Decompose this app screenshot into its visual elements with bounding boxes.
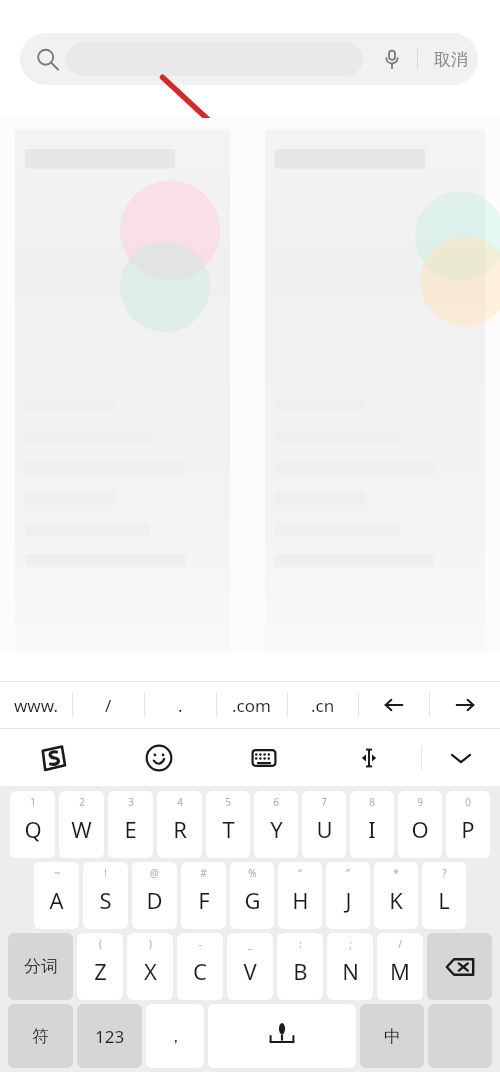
staticText: H	[292, 885, 309, 915]
staticText: 符	[32, 1026, 49, 1047]
staticText: 取消	[434, 49, 468, 70]
button[interactable]: .com	[216, 682, 287, 728]
staticText: G	[244, 885, 261, 915]
staticText: 6	[273, 795, 279, 809]
button[interactable]: Back	[358, 682, 429, 728]
staticText: P	[461, 814, 475, 844]
staticText: 5	[225, 795, 231, 809]
button[interactable]: 3	[108, 791, 153, 858]
staticText: ”	[346, 866, 350, 880]
button[interactable]: 7	[302, 791, 346, 858]
staticText: )	[149, 937, 152, 951]
button[interactable]: 9	[398, 791, 442, 858]
staticText: .	[178, 694, 183, 717]
staticText: S	[99, 885, 112, 915]
button[interactable]: #	[181, 862, 226, 929]
button[interactable]: ?	[422, 862, 466, 929]
button[interactable]: (	[77, 933, 123, 1000]
staticText: /	[398, 937, 402, 951]
button[interactable]: )	[127, 933, 173, 1000]
staticText: “	[298, 866, 302, 880]
staticText: (	[99, 937, 102, 951]
staticText: A	[49, 885, 64, 915]
staticText: W	[71, 814, 92, 844]
staticText: ;	[349, 937, 352, 951]
staticText: -	[198, 937, 202, 951]
staticText: Q	[24, 814, 42, 844]
button[interactable]: Emoji	[106, 729, 211, 786]
button[interactable]: Backspace	[427, 933, 492, 1000]
staticText: E	[124, 814, 137, 844]
staticText: 7	[321, 795, 327, 809]
staticText: .com	[232, 694, 271, 717]
button[interactable]: :	[277, 933, 323, 1000]
staticText: ~	[54, 866, 60, 880]
staticText: I	[368, 814, 376, 844]
button[interactable]: .cn	[287, 682, 358, 728]
button[interactable]: 分词	[8, 933, 73, 1000]
staticText: /	[105, 694, 112, 717]
staticText: ?	[442, 866, 447, 880]
button[interactable]: ;	[327, 933, 373, 1000]
staticText: 1	[30, 795, 36, 809]
staticText: C	[193, 956, 207, 986]
button[interactable]: 2	[59, 791, 104, 858]
button[interactable]: Voice search	[377, 44, 407, 74]
staticText: ，	[167, 1026, 184, 1047]
button[interactable]: 5	[206, 791, 250, 858]
staticText: T	[222, 814, 235, 844]
button[interactable]: ，	[146, 1004, 204, 1068]
staticText: Z	[94, 956, 107, 986]
button[interactable]: 符	[8, 1004, 73, 1068]
button[interactable]: 0	[446, 791, 490, 858]
button[interactable]: 4	[157, 791, 202, 858]
staticText: @	[150, 866, 159, 880]
button[interactable]: *	[374, 862, 418, 929]
staticText: %	[248, 866, 257, 880]
button[interactable]: Search	[20, 33, 478, 85]
button[interactable]: www.	[0, 682, 72, 728]
staticText: 2	[79, 795, 85, 809]
button[interactable]: 123	[77, 1004, 142, 1068]
button[interactable]: Cursor move	[316, 729, 421, 786]
staticText: R	[173, 814, 187, 844]
button[interactable]: ~	[34, 862, 79, 929]
button[interactable]: Forward	[429, 682, 500, 728]
staticText: B	[293, 956, 308, 986]
button[interactable]: %	[230, 862, 274, 929]
button[interactable]: 取消	[430, 41, 472, 78]
button[interactable]: .	[144, 682, 216, 728]
staticText: 3	[128, 795, 134, 809]
staticText: 0	[465, 795, 471, 809]
staticText: F	[198, 885, 210, 915]
staticText: 123	[95, 1025, 125, 1048]
button[interactable]: 8	[350, 791, 394, 858]
button[interactable]: Keyboard layout	[211, 729, 316, 786]
staticText: www.	[14, 694, 58, 717]
button[interactable]: Sogou	[0, 729, 106, 786]
button[interactable]: Space, voice input	[208, 1004, 356, 1068]
staticText: :	[299, 937, 302, 951]
button[interactable]: /	[377, 933, 423, 1000]
button[interactable]: 6	[254, 791, 298, 858]
button[interactable]: Hide keyboard	[422, 729, 500, 786]
staticText: U	[316, 814, 333, 844]
staticText: V	[243, 956, 257, 986]
staticText: 8	[369, 795, 375, 809]
button[interactable]: /	[72, 682, 144, 728]
button[interactable]: ”	[326, 862, 370, 929]
button[interactable]: “	[278, 862, 322, 929]
button[interactable]: 1	[10, 791, 55, 858]
button[interactable]: 中	[360, 1004, 424, 1068]
button[interactable]: @	[132, 862, 177, 929]
staticText: O	[411, 814, 429, 844]
staticText: 9	[417, 795, 423, 809]
staticText: X	[144, 956, 157, 986]
staticText: #	[200, 866, 207, 880]
staticText: Y	[270, 814, 283, 844]
button[interactable]: !	[83, 862, 128, 929]
button[interactable]: -	[177, 933, 223, 1000]
button[interactable]: _	[227, 933, 273, 1000]
staticText: 分词	[24, 956, 58, 977]
